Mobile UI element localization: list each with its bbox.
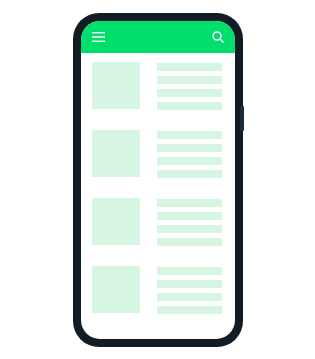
button[interactable]: Search — [208, 27, 228, 47]
button[interactable] — [92, 62, 222, 110]
button[interactable] — [92, 266, 222, 314]
button[interactable] — [92, 130, 222, 178]
button[interactable] — [92, 198, 222, 246]
button[interactable]: Menu — [88, 27, 108, 47]
